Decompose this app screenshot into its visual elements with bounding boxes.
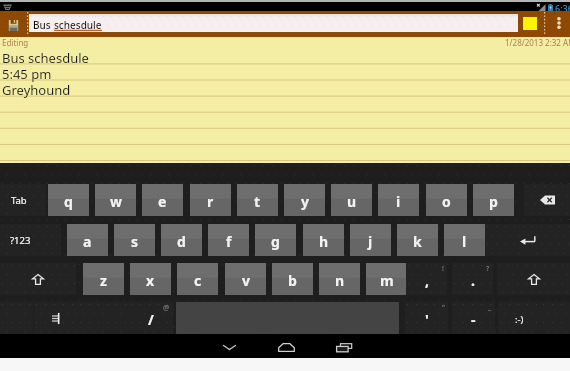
button[interactable]: f bbox=[208, 224, 249, 256]
staticText: r bbox=[207, 192, 214, 211]
staticText: schesdule bbox=[54, 18, 102, 32]
staticText: 5:45 pm bbox=[2, 65, 52, 83]
staticText: m bbox=[380, 271, 394, 290]
button[interactable]: . bbox=[452, 263, 493, 295]
button[interactable]: z bbox=[83, 263, 124, 295]
button[interactable]: r bbox=[190, 184, 231, 216]
button[interactable]: ' bbox=[405, 302, 448, 334]
staticText: i bbox=[396, 192, 401, 211]
button[interactable]: Shift bbox=[497, 263, 570, 295]
staticText: _ bbox=[488, 303, 492, 313]
staticText: n bbox=[335, 271, 345, 290]
button[interactable]: q bbox=[48, 184, 89, 216]
staticText: a bbox=[83, 232, 92, 251]
staticText: x bbox=[146, 271, 155, 290]
staticText: " bbox=[442, 303, 445, 313]
staticText: q bbox=[64, 192, 73, 211]
staticText: t bbox=[254, 192, 261, 211]
staticText: j bbox=[368, 232, 373, 251]
button[interactable]: Keyboard settings bbox=[34, 302, 78, 334]
staticText: 1/28/2013 2:32 AM bbox=[505, 37, 570, 48]
button[interactable]: More options bbox=[547, 11, 570, 35]
button[interactable]: Note colour bbox=[518, 13, 542, 33]
staticText: - bbox=[471, 310, 476, 329]
staticText: c bbox=[194, 271, 202, 290]
staticText: ?123 bbox=[10, 234, 31, 247]
staticText: Bus bbox=[33, 18, 54, 32]
staticText: Editing bbox=[2, 37, 29, 48]
staticText: w bbox=[110, 192, 122, 211]
button[interactable]: m bbox=[366, 263, 407, 295]
button[interactable]: y bbox=[284, 184, 325, 216]
button[interactable]: Bus bbox=[29, 14, 518, 32]
button[interactable]: l bbox=[444, 224, 485, 256]
button[interactable]: / bbox=[129, 302, 173, 334]
staticText: . bbox=[471, 271, 475, 290]
button[interactable]: Save note bbox=[0, 12, 27, 38]
button[interactable]: ?123 bbox=[0, 224, 61, 256]
button[interactable]: w bbox=[95, 184, 136, 216]
staticText: s bbox=[131, 232, 139, 251]
button[interactable]: b bbox=[272, 263, 313, 295]
button[interactable]: g bbox=[255, 224, 296, 256]
staticText: u bbox=[347, 192, 357, 211]
button[interactable]: v bbox=[225, 263, 266, 295]
button[interactable]: , bbox=[406, 263, 447, 295]
staticText: p bbox=[489, 192, 498, 211]
button[interactable]: n bbox=[319, 263, 360, 295]
button[interactable]: k bbox=[397, 224, 438, 256]
button[interactable]: j bbox=[350, 224, 391, 256]
button[interactable]: Tab bbox=[0, 184, 46, 216]
staticText: b bbox=[288, 271, 297, 290]
staticText: ! bbox=[442, 264, 444, 274]
staticText: e bbox=[158, 192, 167, 211]
button[interactable]: e bbox=[142, 184, 183, 216]
button[interactable]: h bbox=[303, 224, 344, 256]
staticText: Tab bbox=[11, 194, 27, 207]
staticText: k bbox=[413, 232, 422, 251]
button[interactable]: Recent apps bbox=[315, 335, 373, 359]
button[interactable]: u bbox=[331, 184, 372, 216]
button[interactable]: Shift bbox=[0, 263, 76, 295]
button[interactable]: a bbox=[67, 224, 108, 256]
staticText: z bbox=[100, 271, 107, 290]
button[interactable]: s bbox=[114, 224, 155, 256]
staticText: :-) bbox=[515, 313, 524, 326]
staticText: 6:36 bbox=[555, 2, 570, 11]
button[interactable]: Home bbox=[257, 335, 315, 359]
button[interactable]: Hide keyboard bbox=[200, 335, 258, 359]
staticText: Greyhound bbox=[2, 81, 71, 99]
staticText: ' bbox=[425, 310, 429, 329]
button[interactable]: :-) bbox=[498, 302, 541, 334]
button[interactable]: p bbox=[473, 184, 514, 216]
staticText: h bbox=[319, 232, 329, 251]
button[interactable]: Backspace bbox=[524, 184, 570, 216]
staticText: l bbox=[462, 232, 467, 251]
staticText: @ bbox=[163, 303, 170, 313]
staticText: g bbox=[271, 232, 280, 251]
button[interactable]: o bbox=[426, 184, 467, 216]
staticText: ? bbox=[486, 264, 490, 274]
button[interactable]: d bbox=[161, 224, 202, 256]
button[interactable]: Enter bbox=[485, 224, 570, 256]
button[interactable]: i bbox=[378, 184, 419, 216]
staticText: y bbox=[301, 192, 309, 211]
button[interactable]: c bbox=[177, 263, 218, 295]
staticText: o bbox=[442, 192, 451, 211]
staticText: , bbox=[425, 271, 429, 290]
staticText: Bus schesdule bbox=[2, 49, 89, 67]
staticText: f bbox=[226, 232, 232, 251]
staticText: v bbox=[242, 271, 250, 290]
button[interactable]: - bbox=[452, 302, 495, 334]
button[interactable]: t bbox=[237, 184, 278, 216]
button[interactable]: x bbox=[130, 263, 171, 295]
staticText: / bbox=[148, 310, 154, 329]
staticText: d bbox=[177, 232, 186, 251]
